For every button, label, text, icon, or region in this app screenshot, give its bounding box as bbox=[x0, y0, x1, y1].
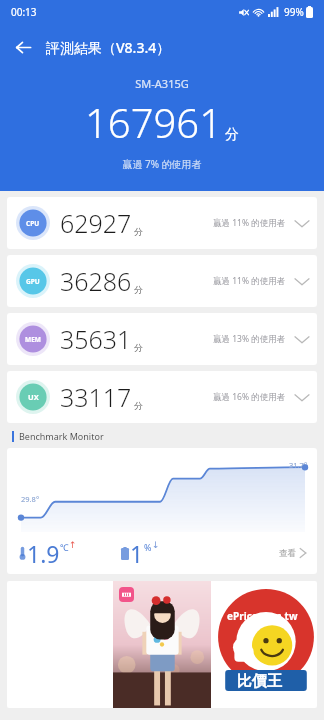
staticText: 贏過 11% 的使用者 bbox=[213, 217, 286, 229]
staticText: 查看 bbox=[279, 548, 296, 559]
staticText: MEM bbox=[25, 335, 41, 344]
staticText: 99% bbox=[284, 5, 304, 19]
button[interactable]: CPU bbox=[7, 197, 317, 249]
staticText: 33117 bbox=[60, 380, 132, 414]
staticText: SM-A315G bbox=[0, 76, 324, 91]
staticText: GPU bbox=[26, 277, 40, 286]
staticText: ↓ bbox=[152, 540, 160, 550]
staticText: 29.8° bbox=[21, 494, 40, 504]
staticText: 1.9 bbox=[27, 538, 60, 569]
staticText: Benchmark Monitor bbox=[19, 430, 104, 442]
staticText: 分 bbox=[134, 342, 143, 353]
staticText: 分 bbox=[134, 284, 143, 295]
button[interactable]: Back bbox=[0, 24, 46, 70]
staticText: UX bbox=[28, 392, 39, 402]
staticText: 62927 bbox=[60, 206, 132, 240]
staticText: % bbox=[144, 541, 152, 553]
staticText: 贏過 13% 的使用者 bbox=[213, 333, 286, 345]
staticText: 分 bbox=[134, 400, 143, 411]
staticText: 比價王 bbox=[237, 672, 282, 691]
staticText: 31.7° bbox=[289, 460, 308, 470]
staticText: 1 bbox=[130, 538, 144, 569]
staticText: CPU bbox=[26, 219, 40, 228]
staticText: 贏過 7% 的使用者 bbox=[0, 157, 324, 171]
staticText: 00:13 bbox=[11, 5, 37, 19]
staticText: 分 bbox=[134, 226, 143, 237]
staticText: ℃ bbox=[60, 541, 69, 553]
button[interactable]: MEM bbox=[7, 313, 317, 365]
staticText: ePrice.com.tw bbox=[227, 609, 298, 623]
button[interactable]: 查看 bbox=[279, 546, 307, 560]
button[interactable]: 29.8° bbox=[7, 448, 317, 574]
staticText: 評測結果（V8.3.4） bbox=[46, 38, 171, 57]
button[interactable]: ePrice.com.tw bbox=[7, 581, 317, 708]
staticText: 分 bbox=[225, 126, 239, 144]
staticText: 36286 bbox=[60, 264, 132, 298]
staticText: 35631 bbox=[60, 322, 132, 356]
button[interactable]: UX bbox=[7, 371, 317, 423]
staticText: 167961 bbox=[85, 95, 223, 149]
staticText: 贏過 11% 的使用者 bbox=[213, 275, 286, 287]
button[interactable]: GPU bbox=[7, 255, 317, 307]
staticText: ↑ bbox=[69, 540, 77, 550]
staticText: 贏過 16% 的使用者 bbox=[213, 391, 286, 403]
